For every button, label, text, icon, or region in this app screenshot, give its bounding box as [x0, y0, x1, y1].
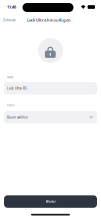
- staticText: Raum: [7, 103, 14, 107]
- button[interactable]: Zuhause: [0, 16, 18, 24]
- staticText: Weiter: [45, 199, 55, 204]
- staticText: Zuhause: [3, 18, 16, 22]
- staticText: Lock Ultra BS: [7, 86, 27, 90]
- staticText: Name: [7, 75, 13, 79]
- button[interactable]: Weiter: [0, 195, 101, 208]
- staticText: 11:40: [7, 4, 16, 10]
- staticText: Raum wählen: [7, 115, 28, 119]
- button[interactable]: Raum wählen: [0, 111, 101, 123]
- staticText: Lock Ultra hinzufügen: [27, 17, 71, 23]
